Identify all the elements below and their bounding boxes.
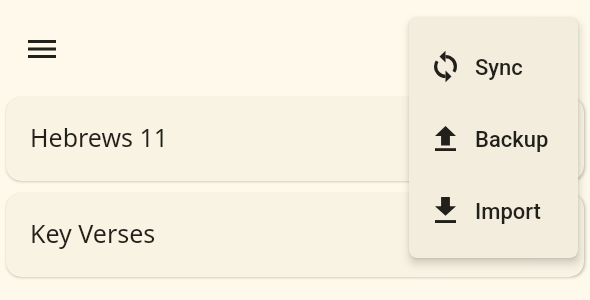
button[interactable]: Backup: [409, 102, 578, 174]
button[interactable]: Open navigation menu: [18, 25, 66, 73]
button[interactable]: Import: [409, 174, 578, 246]
staticText: Import: [475, 199, 541, 225]
staticText: Sync: [475, 55, 523, 81]
button[interactable]: Hebrews 11: [6, 97, 584, 181]
staticText: Key Verses: [30, 216, 156, 250]
button[interactable]: Sync: [409, 30, 578, 102]
staticText: Backup: [475, 127, 549, 153]
button[interactable]: Key Verses: [6, 193, 584, 277]
staticText: Hebrews 11: [30, 120, 169, 154]
